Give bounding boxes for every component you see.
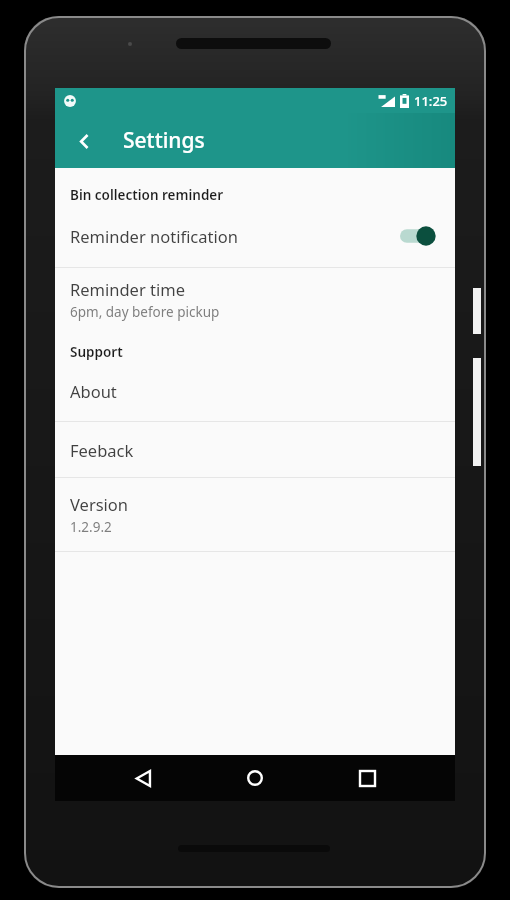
button[interactable]: Home (231, 755, 279, 801)
staticText: Settings (123, 126, 205, 155)
staticText: Version (70, 493, 129, 515)
staticText: About (70, 380, 117, 402)
button[interactable]: Reminder notification toggle (400, 225, 440, 247)
button[interactable]: Feeback (55, 422, 455, 477)
staticText: Feeback (70, 439, 134, 461)
staticText: 11:25 (414, 92, 448, 110)
staticText: 6pm, day before pickup (70, 303, 220, 321)
button[interactable]: Reminder notification (55, 214, 455, 258)
button[interactable]: About (55, 371, 455, 411)
staticText: 1.2.9.2 (70, 518, 112, 536)
button[interactable]: Recent apps (343, 755, 391, 801)
button[interactable]: Version (55, 478, 455, 551)
staticText: Reminder time (70, 278, 185, 300)
button[interactable]: Back (119, 755, 167, 801)
button[interactable]: Reminder time (55, 268, 455, 331)
button[interactable]: Back (63, 120, 105, 162)
staticText: Bin collection reminder (70, 186, 224, 204)
staticText: Reminder notification (70, 225, 238, 247)
staticText: Support (70, 343, 123, 361)
